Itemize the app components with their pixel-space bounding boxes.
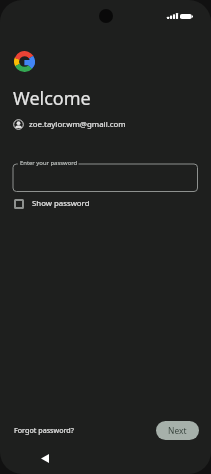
button[interactable]: Next [156,421,199,440]
staticText: Next [168,425,187,436]
button[interactable]: Enter your password [13,158,198,192]
button[interactable]: Show password [12,196,92,211]
staticText: Show password [32,198,90,209]
button[interactable]: Back [33,446,57,470]
staticText: Welcome [13,86,91,111]
button[interactable]: zoe.taylor.wm@gmail.com [11,117,128,132]
staticText: Enter your password [20,159,78,167]
staticText: zoe.taylor.wm@gmail.com [29,119,126,130]
button[interactable]: Forgot password? [11,422,77,438]
